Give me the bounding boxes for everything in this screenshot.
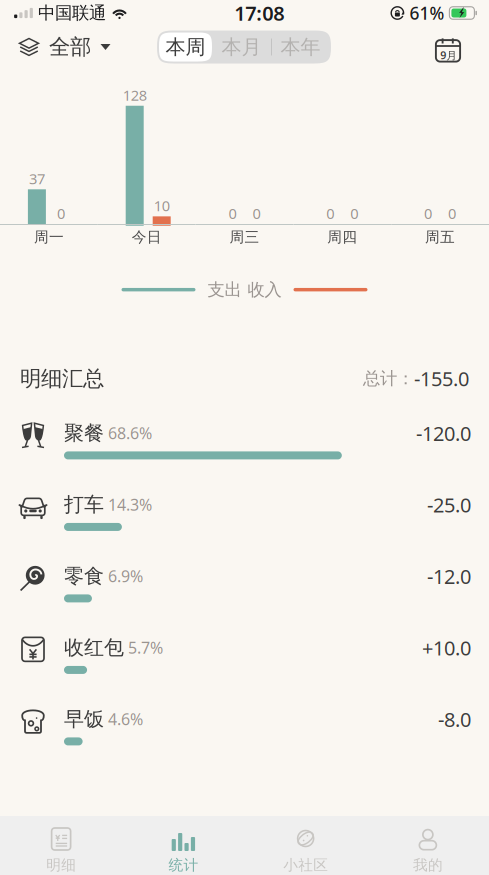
staticText: -25.0 — [427, 491, 471, 518]
staticText: 61% — [409, 1, 444, 24]
button[interactable]: 统计 — [122, 816, 244, 875]
button[interactable]: 本月 — [212, 32, 271, 61]
button[interactable]: 我的 — [367, 816, 489, 875]
staticText: 6.9% — [108, 565, 143, 587]
button[interactable]: 早饭 — [0, 701, 489, 772]
staticText: 周五 — [425, 228, 455, 246]
staticText: 本月 — [221, 35, 261, 59]
staticText: 零食 — [64, 564, 104, 588]
staticText: 我的 — [413, 856, 443, 874]
staticText: 全部 — [49, 34, 91, 60]
staticText: 聚餐 — [64, 421, 104, 445]
staticText: 周三 — [229, 228, 259, 246]
staticText: 总计： — [363, 368, 414, 389]
staticText: 0 — [57, 203, 65, 223]
staticText: -120.0 — [416, 420, 471, 446]
staticText: 14.3% — [108, 494, 152, 515]
staticText: 9月 — [440, 48, 457, 62]
staticText: 0 — [350, 203, 358, 223]
staticText: 0 — [424, 203, 432, 223]
staticText: 37 — [29, 169, 45, 188]
button[interactable]: 零食 — [0, 558, 489, 629]
staticText: 收入 — [247, 279, 281, 300]
staticText: 0 — [252, 203, 260, 223]
staticText: 中国联通 — [38, 2, 106, 24]
staticText: 周四 — [327, 228, 357, 246]
staticText: 128 — [123, 85, 147, 105]
button[interactable]: 收红包 — [0, 629, 489, 701]
staticText: 收红包 — [64, 635, 124, 660]
staticText: 统计 — [168, 856, 198, 874]
staticText: 4.6% — [108, 708, 143, 730]
staticText: -155.0 — [414, 365, 469, 392]
staticText: 0 — [448, 203, 456, 223]
staticText: 0 — [326, 203, 334, 223]
staticText: 0 — [228, 203, 236, 223]
button[interactable]: 本周 — [159, 32, 212, 61]
staticText: 今日 — [132, 228, 162, 246]
staticText: -8.0 — [438, 706, 471, 732]
button[interactable]: Select month — [423, 26, 489, 68]
staticText: -12.0 — [427, 563, 471, 589]
staticText: 周一 — [34, 228, 64, 246]
button[interactable]: 聚餐 — [0, 415, 489, 486]
staticText: 5.7% — [128, 637, 163, 658]
staticText: +10.0 — [422, 634, 471, 661]
button[interactable]: 明细 — [0, 816, 122, 875]
staticText: 明细 — [46, 856, 76, 874]
staticText: 明细汇总 — [20, 365, 104, 392]
button[interactable]: 打车 — [0, 486, 489, 558]
staticText: 支出 — [207, 279, 241, 300]
staticText: 小社区 — [283, 856, 328, 874]
staticText: 本周 — [165, 35, 205, 59]
button[interactable]: 全部 — [0, 26, 119, 68]
button[interactable]: 本年 — [272, 32, 329, 61]
staticText: 10 — [154, 196, 170, 215]
staticText: 早饭 — [64, 707, 104, 731]
button[interactable]: 小社区 — [244, 816, 367, 875]
staticText: 68.6% — [108, 422, 152, 444]
staticText: 打车 — [64, 492, 104, 517]
staticText: 17:08 — [234, 0, 284, 26]
staticText: 本年 — [280, 35, 320, 59]
